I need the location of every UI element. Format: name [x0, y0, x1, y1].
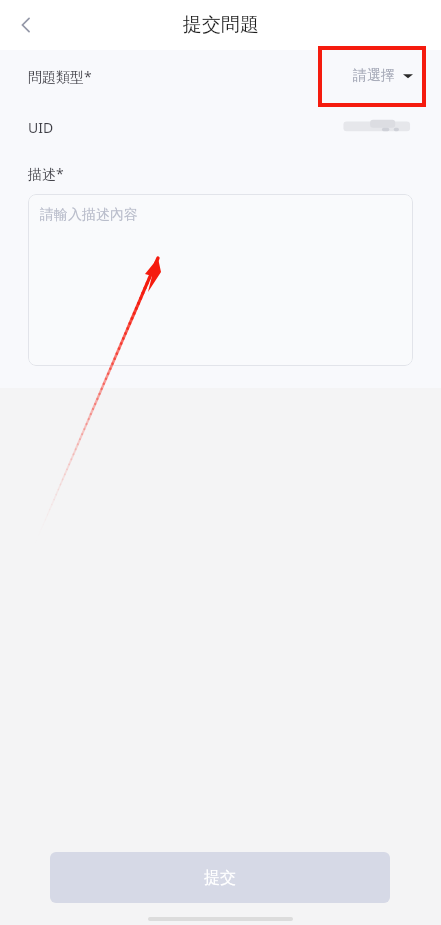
button[interactable]: Back — [4, 3, 48, 47]
button[interactable]: 提交 — [50, 852, 390, 903]
staticText: 提交 — [204, 868, 236, 888]
staticText: 請輸入描述內容 — [40, 206, 138, 224]
staticText: 問題類型* — [28, 67, 92, 86]
staticText: 描述* — [28, 164, 64, 183]
button[interactable]: 請輸入描述內容 — [28, 194, 413, 366]
staticText: UID — [28, 118, 54, 137]
staticText: 請選擇 — [353, 67, 395, 85]
staticText: 提交問題 — [183, 13, 259, 37]
button[interactable]: 問題類型* — [0, 50, 441, 102]
